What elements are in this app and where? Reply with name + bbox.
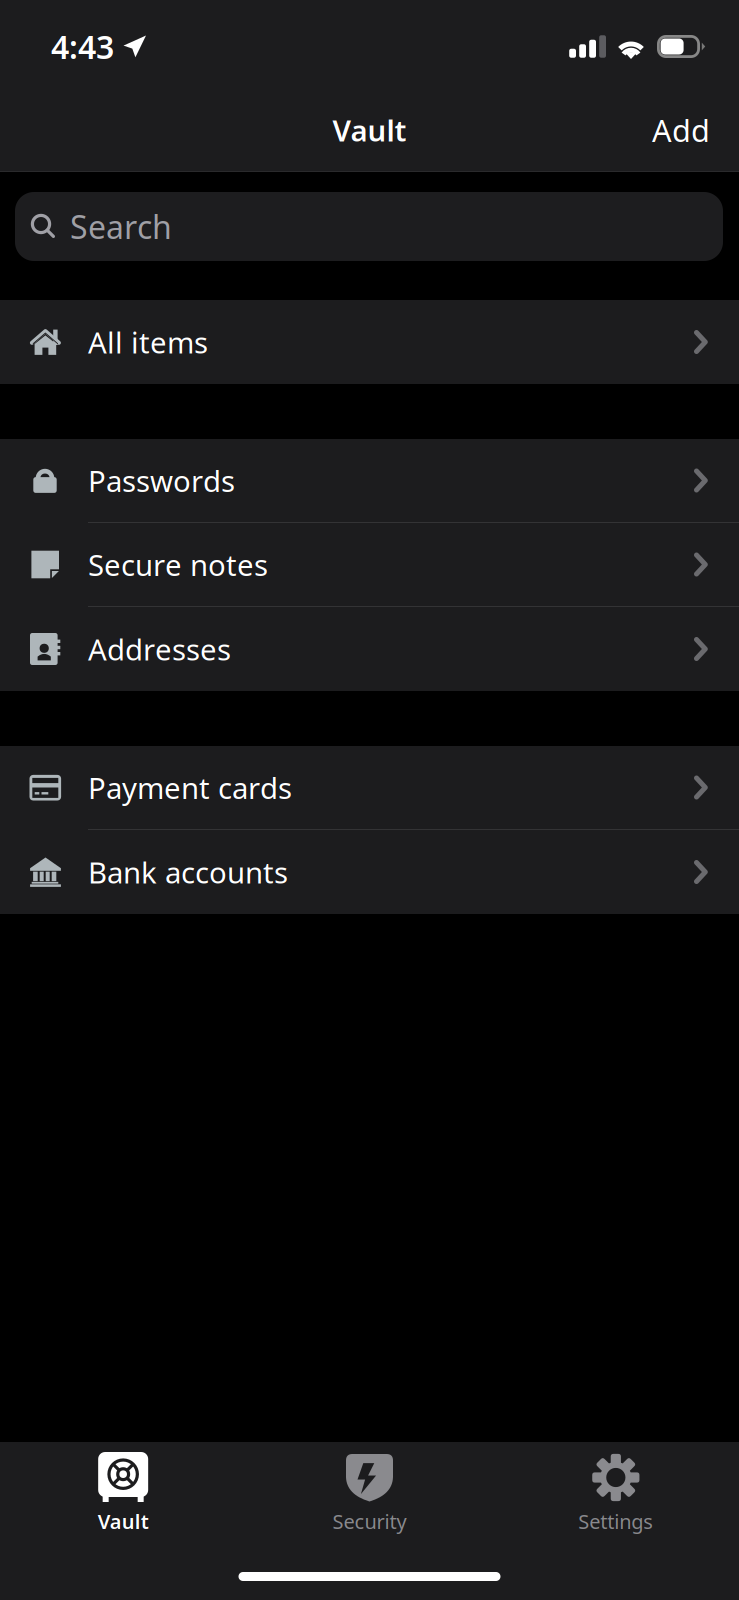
staticText: Settings bbox=[578, 1508, 653, 1535]
button[interactable]: Security bbox=[246, 1452, 493, 1535]
button[interactable]: Settings bbox=[493, 1452, 739, 1535]
staticText: All items bbox=[88, 322, 208, 361]
button[interactable]: Vault bbox=[0, 1452, 246, 1535]
button[interactable]: Add bbox=[652, 96, 739, 164]
staticText: 4:43 bbox=[51, 25, 114, 68]
staticText: Secure notes bbox=[88, 545, 268, 584]
staticText: Search bbox=[70, 205, 172, 248]
staticText: Payment cards bbox=[88, 768, 292, 807]
staticText: Addresses bbox=[88, 629, 231, 668]
button[interactable]: All items bbox=[0, 300, 739, 384]
button[interactable]: Payment cards bbox=[0, 746, 739, 830]
button[interactable]: Addresses bbox=[0, 607, 739, 691]
staticText: Vault bbox=[332, 110, 406, 149]
staticText: Bank accounts bbox=[88, 852, 288, 891]
button[interactable]: Bank accounts bbox=[0, 830, 739, 914]
button[interactable]: Secure notes bbox=[0, 523, 739, 607]
staticText: Security bbox=[332, 1508, 406, 1535]
staticText: Passwords bbox=[88, 461, 235, 500]
staticText: Add bbox=[652, 110, 710, 150]
staticText: Vault bbox=[98, 1508, 149, 1535]
button[interactable]: Passwords bbox=[0, 439, 739, 523]
